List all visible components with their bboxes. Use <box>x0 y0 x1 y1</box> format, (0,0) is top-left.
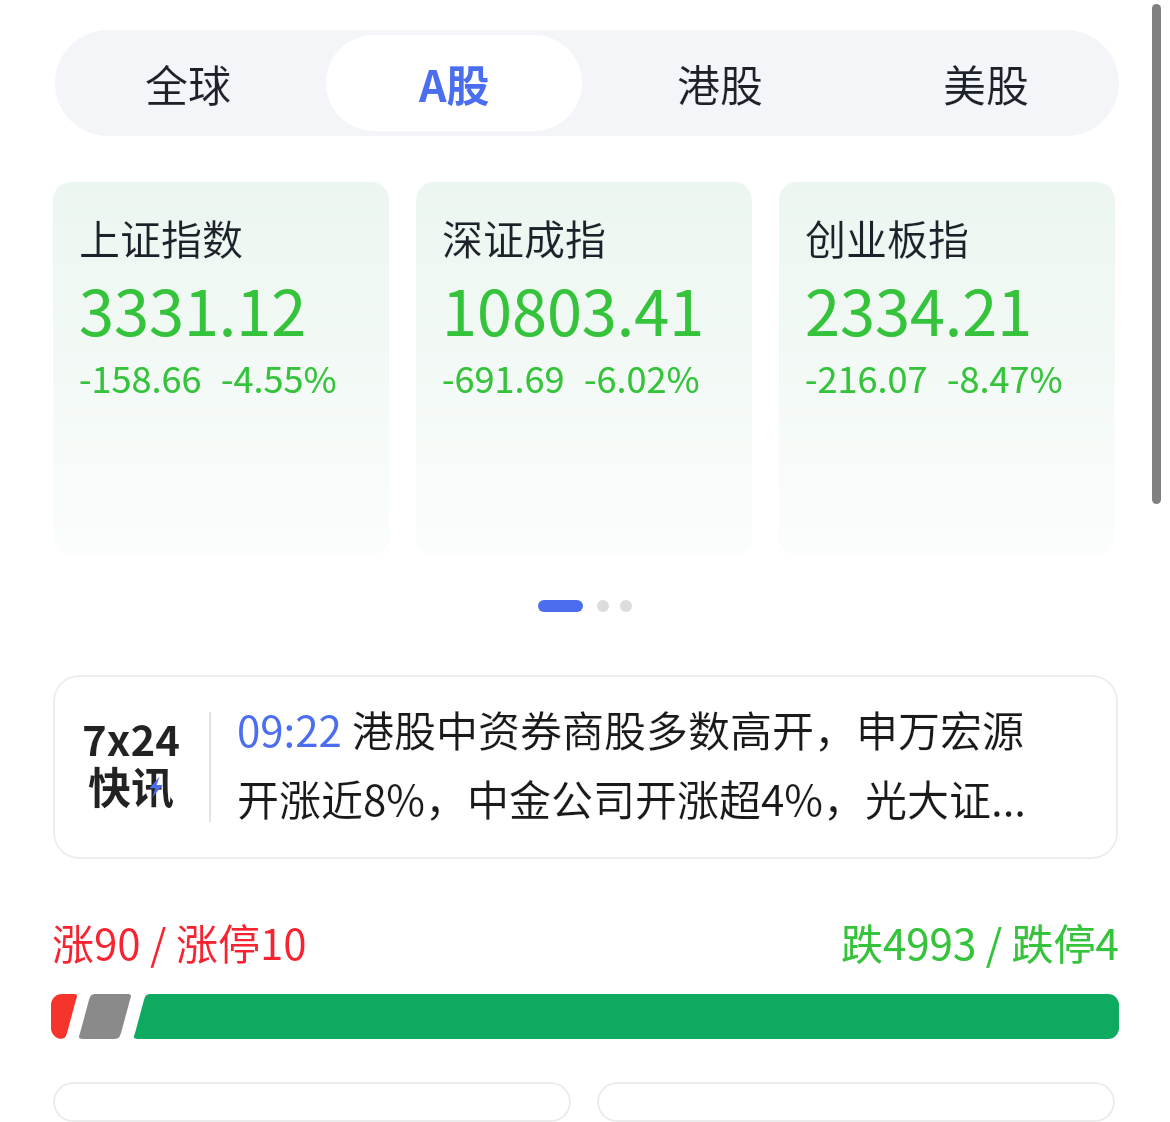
staticText: 创业板指 <box>805 207 969 266</box>
staticText: 2334.21 <box>805 263 1033 354</box>
staticText: 10803.41 <box>442 263 705 354</box>
staticText: 全球 <box>145 52 231 114</box>
staticText: 3331.12 <box>79 263 307 354</box>
button[interactable]: A股 <box>326 35 582 131</box>
button[interactable] <box>53 1082 571 1122</box>
button[interactable]: 美股 <box>858 35 1114 131</box>
staticText: -216.07 <box>805 351 928 403</box>
staticText: 09:22 <box>237 698 352 759</box>
staticText: 快讯 <box>88 754 174 816</box>
button[interactable]: 7x24 <box>53 675 1118 859</box>
staticText: A股 <box>419 52 490 114</box>
button[interactable] <box>597 1082 1115 1122</box>
staticText: -4.55% <box>221 351 337 403</box>
staticText: 美股 <box>943 52 1029 114</box>
staticText: 涨90 / 涨停10 <box>52 911 307 972</box>
staticText: -8.47% <box>947 351 1063 403</box>
button[interactable]: 创业板指 <box>779 182 1115 555</box>
staticText: -6.02% <box>584 351 700 403</box>
staticText: 深证成指 <box>442 207 606 266</box>
button[interactable]: 全球 <box>60 35 316 131</box>
staticText: 7x24 <box>82 707 180 768</box>
staticText: 港股 <box>677 52 763 114</box>
staticText: -691.69 <box>442 351 565 403</box>
staticText: 跌4993 / 跌停4 <box>841 911 1119 972</box>
button[interactable]: 港股 <box>592 35 848 131</box>
staticText: 开涨近8%，中金公司开涨超4%，光大证... <box>237 767 1027 828</box>
button[interactable]: 深证成指 <box>416 182 752 555</box>
button[interactable]: 上证指数 <box>53 182 389 555</box>
staticText: 港股中资券商股多数高开，申万宏源 <box>352 698 1025 759</box>
staticText: 上证指数 <box>79 207 243 266</box>
staticText: -158.66 <box>79 351 202 403</box>
